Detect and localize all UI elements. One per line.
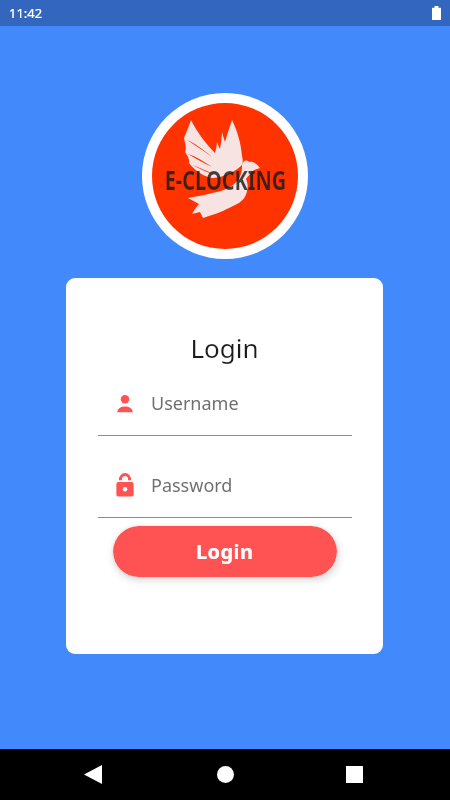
button[interactable]: Username [116,386,333,420]
staticText: E-CLOCKING [164,161,287,197]
button[interactable]: Recents [330,749,378,800]
staticText: Password [151,473,233,498]
button[interactable]: Back [69,749,117,800]
button[interactable]: Login [113,526,337,577]
staticText: 11:42 [9,4,43,22]
button[interactable]: Home [201,749,249,800]
staticText: Username [151,391,239,416]
button[interactable]: Password [116,468,333,502]
staticText: Login [196,538,254,565]
staticText: Login [66,330,383,365]
